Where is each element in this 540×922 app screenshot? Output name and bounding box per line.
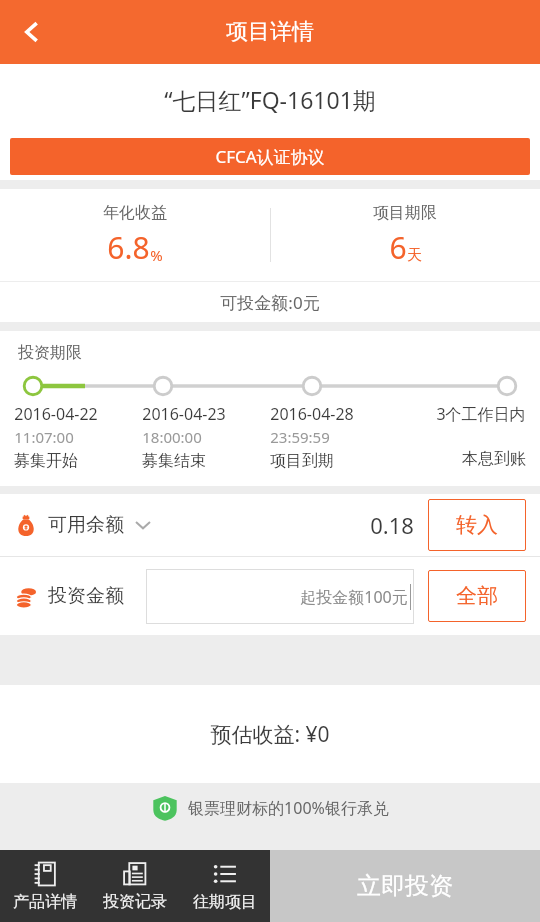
staticText: 转入 [456,512,498,538]
staticText: 投资期限 [18,343,82,363]
staticText: 项目详情 [226,18,314,46]
staticText: 投资记录 [103,892,167,912]
button[interactable]: Expand balance [132,514,154,536]
button[interactable]: 产品详情 [0,850,90,922]
staticText: 2016-04-28 [270,403,354,425]
staticText: 可用余额 [48,513,124,537]
button[interactable]: Back [0,0,64,64]
staticText: 银票理财标的100%银行承兑 [188,797,389,819]
staticText: 3个工作日内 [436,403,526,425]
button[interactable]: CFCA认证协议 [10,138,530,175]
button[interactable]: 立即投资 [270,850,540,922]
staticText: 6 [389,227,407,268]
staticText: 产品详情 [13,892,77,912]
staticText: 预估收益: ¥0 [210,720,330,749]
staticText: 往期项目 [193,892,257,912]
staticText: “七日红”FQ-16101期 [164,84,376,115]
staticText: % [150,245,163,265]
staticText: 11:07:00 [14,427,74,447]
staticText: 2016-04-23 [142,403,226,425]
staticText: 起投金额100元 [300,586,408,608]
staticText: 募集结束 [142,451,206,471]
staticText: 6.8 [107,227,150,268]
staticText: 本息到账 [462,449,526,469]
staticText: 项目到期 [270,451,334,471]
staticText: 可投金额:0元 [220,291,320,314]
button[interactable]: 全部 [428,570,526,622]
button[interactable]: 转入 [428,499,526,551]
button[interactable]: 往期项目 [180,850,270,922]
staticText: 23:59:59 [270,427,330,447]
staticText: 募集开始 [14,451,78,471]
staticText: 年化收益 [103,203,167,223]
button[interactable]: 投资记录 [90,850,180,922]
staticText: 0.18 [370,510,414,540]
staticText: 18:00:00 [142,427,202,447]
staticText: 2016-04-22 [14,403,98,425]
staticText: CFCA认证协议 [215,145,325,168]
staticText: 全部 [456,583,498,609]
staticText: 天 [407,246,422,265]
staticText: 投资金额 [48,584,124,608]
staticText: 立即投资 [357,871,453,901]
staticText: 项目期限 [373,203,437,223]
button[interactable]: 起投金额100元 [146,569,414,624]
